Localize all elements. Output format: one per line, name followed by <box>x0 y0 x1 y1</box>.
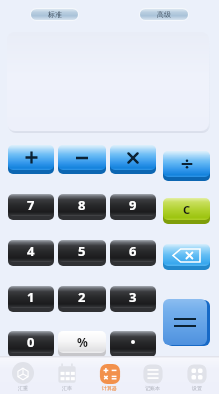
staticText: C <box>183 202 191 217</box>
button[interactable]: 7 <box>8 194 54 219</box>
button[interactable]: 6 <box>110 240 156 265</box>
button[interactable] <box>163 151 210 180</box>
button[interactable]: 0 <box>8 331 54 356</box>
staticText: 7 <box>27 196 35 214</box>
button[interactable]: C <box>163 198 210 223</box>
staticText: 6 <box>129 242 137 260</box>
button[interactable]: 2 <box>58 286 106 311</box>
button[interactable] <box>110 331 156 356</box>
button[interactable]: 1 <box>8 286 54 311</box>
button[interactable]: 4 <box>8 240 54 265</box>
staticText: 标准 <box>48 10 62 19</box>
staticText: 高级 <box>157 10 171 19</box>
button[interactable]: 计算器 <box>89 356 130 394</box>
staticText: 汇重 <box>18 385 28 391</box>
button[interactable] <box>8 145 54 173</box>
staticText: 4 <box>27 242 35 260</box>
button[interactable]: 高级 <box>140 9 188 20</box>
button[interactable]: 5 <box>58 240 106 265</box>
staticText: 8 <box>78 196 86 214</box>
button[interactable]: Backspace <box>163 244 210 269</box>
button[interactable]: 8 <box>58 194 106 219</box>
staticText: 计算器 <box>102 385 117 391</box>
button[interactable]: 设置 <box>176 356 217 394</box>
button[interactable]: % <box>58 331 106 356</box>
button[interactable]: 9 <box>110 194 156 219</box>
staticText: 9 <box>129 196 137 214</box>
button[interactable]: 汇重 <box>2 356 43 394</box>
button[interactable]: 汇率 <box>46 356 87 394</box>
staticText: 设置 <box>192 385 202 391</box>
staticText: 0 <box>27 333 35 351</box>
staticText: 5 <box>78 242 86 260</box>
staticText: 1 <box>27 288 35 306</box>
button[interactable]: 记账本 <box>132 356 173 394</box>
staticText: 3 <box>129 288 137 306</box>
staticText: 记账本 <box>145 385 160 391</box>
button[interactable]: Equals <box>163 299 210 347</box>
button[interactable]: 3 <box>110 286 156 311</box>
staticText: 汇率 <box>62 385 72 391</box>
staticText: % <box>77 334 88 350</box>
button[interactable]: 标准 <box>31 9 78 20</box>
staticText: 2 <box>78 288 86 306</box>
button[interactable] <box>110 145 156 173</box>
button[interactable] <box>58 145 106 173</box>
